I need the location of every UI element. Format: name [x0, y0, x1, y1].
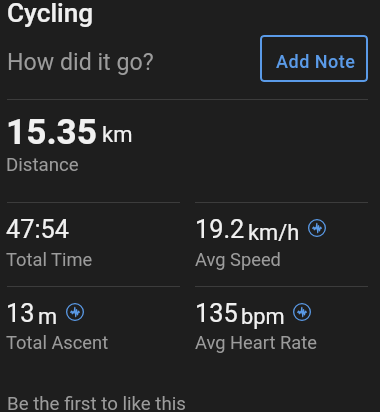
staticText: km/h — [248, 220, 300, 246]
staticText: km — [102, 122, 133, 148]
staticText: Be the first to like this — [7, 393, 186, 412]
staticText: 15.35 — [6, 111, 97, 152]
staticText: How did it go? — [7, 48, 154, 75]
staticText: Avg Speed — [195, 249, 281, 270]
staticText: Total Time — [6, 249, 93, 270]
staticText: bpm — [241, 304, 285, 330]
staticText: 47:54 — [6, 215, 69, 245]
staticText: Cycling — [7, 0, 94, 29]
staticText: Add Note — [276, 51, 356, 72]
staticText: 13 — [6, 299, 35, 329]
staticText: 135 — [195, 299, 238, 329]
staticText: 19.2 — [195, 215, 245, 245]
staticText: m — [38, 304, 58, 330]
button[interactable]: Add Note — [260, 35, 368, 82]
staticText: Distance — [6, 154, 79, 176]
staticText: Avg Heart Rate — [195, 332, 317, 353]
staticText: Total Ascent — [6, 332, 109, 353]
